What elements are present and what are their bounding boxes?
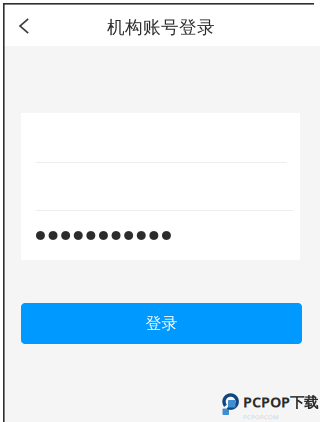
button[interactable]: Back — [0, 4, 47, 46]
button[interactable]: 登录 — [21, 303, 302, 344]
staticText: PCPOP下载 — [243, 392, 318, 412]
staticText: 机构账号登录 — [107, 16, 215, 39]
staticText: 登录 — [145, 313, 177, 334]
staticText: PCPOP.COM — [243, 413, 279, 421]
